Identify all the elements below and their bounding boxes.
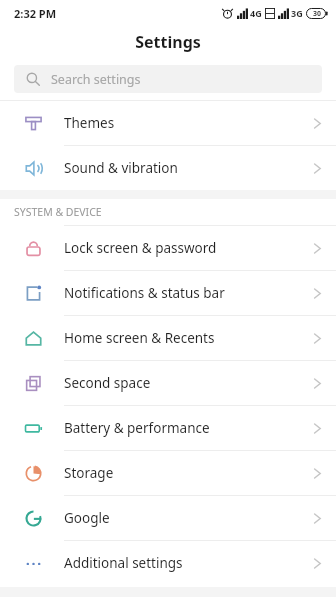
staticText: Sound & vibration xyxy=(64,159,313,177)
button[interactable]: Home screen & Recents xyxy=(0,316,336,360)
staticText: Home screen & Recents xyxy=(64,329,313,347)
button[interactable]: Additional settings xyxy=(0,541,336,585)
button[interactable]: Notifications & status bar xyxy=(0,271,336,315)
staticText: Storage xyxy=(64,464,313,482)
button[interactable]: Second space xyxy=(0,361,336,405)
staticText: 2:32 PM xyxy=(14,6,57,21)
staticText: Lock screen & password xyxy=(64,239,313,257)
staticText: Themes xyxy=(64,114,313,132)
staticText: SYSTEM & DEVICE xyxy=(14,205,102,219)
button[interactable]: Battery & performance xyxy=(0,406,336,450)
staticText: Second space xyxy=(64,374,313,392)
button[interactable]: Sound & vibration xyxy=(0,146,336,190)
staticText: Google xyxy=(64,509,313,527)
staticText: 3G xyxy=(291,7,303,19)
button[interactable]: Storage xyxy=(0,451,336,495)
staticText: Settings xyxy=(135,31,201,53)
staticText: Search settings xyxy=(51,71,141,88)
button[interactable]: Lock screen & password xyxy=(0,226,336,270)
button[interactable]: Themes xyxy=(0,101,336,145)
staticText: Additional settings xyxy=(64,554,313,572)
staticText: 4G xyxy=(250,7,262,19)
button[interactable]: Search settings xyxy=(14,65,322,93)
staticText: 30 xyxy=(313,9,322,19)
button[interactable]: Google xyxy=(0,496,336,540)
staticText: Notifications & status bar xyxy=(64,284,313,302)
staticText: Battery & performance xyxy=(64,419,313,437)
